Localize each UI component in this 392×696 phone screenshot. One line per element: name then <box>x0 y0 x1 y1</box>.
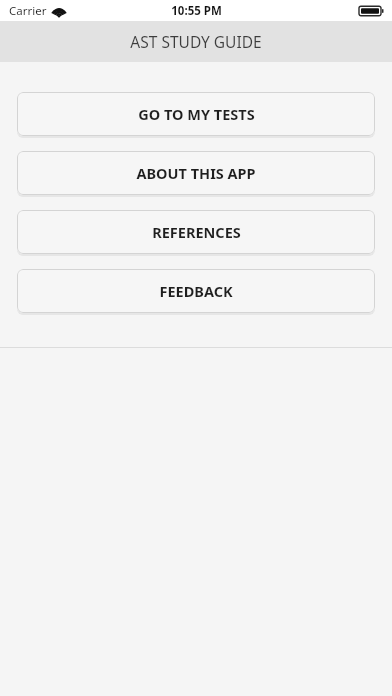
button[interactable]: GO TO MY TESTS <box>17 92 375 136</box>
button[interactable]: FEEDBACK <box>17 269 375 313</box>
staticText: ABOUT THIS APP <box>136 163 256 183</box>
staticText: FEEDBACK <box>159 281 233 301</box>
staticText: 10:55 PM <box>171 3 222 19</box>
staticText: Carrier <box>9 3 47 19</box>
staticText: GO TO MY TESTS <box>138 104 255 124</box>
button[interactable]: ABOUT THIS APP <box>17 151 375 195</box>
button[interactable]: REFERENCES <box>17 210 375 254</box>
staticText: AST STUDY GUIDE <box>130 31 262 52</box>
staticText: REFERENCES <box>152 222 241 242</box>
